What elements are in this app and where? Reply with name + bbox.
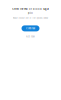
staticText: Select the end of blood sugar bbox=[12, 7, 49, 11]
staticText: Please choose one of the options below bbox=[12, 17, 48, 19]
staticText: Continue bbox=[26, 27, 35, 30]
staticText: pill bbox=[28, 12, 33, 15]
button[interactable]: Continue bbox=[21, 25, 39, 31]
staticText: Not now bbox=[26, 35, 35, 38]
button[interactable]: Not now bbox=[26, 35, 35, 38]
